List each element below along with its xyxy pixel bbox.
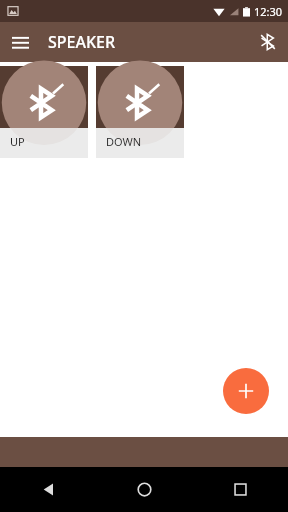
staticText: UP <box>10 134 25 149</box>
button[interactable]: Add <box>223 368 269 414</box>
button[interactable]: Home <box>96 467 192 512</box>
button[interactable]: Recent apps <box>192 467 288 512</box>
button[interactable]: Back <box>0 467 96 512</box>
button[interactable]: UP <box>0 66 88 158</box>
button[interactable]: Bluetooth disabled <box>248 22 288 62</box>
button[interactable]: Open navigation drawer <box>0 22 40 62</box>
staticText: SPEAKER <box>48 31 116 53</box>
staticText: DOWN <box>106 134 142 149</box>
staticText: 12:30 <box>254 4 283 19</box>
button[interactable]: DOWN <box>96 66 184 158</box>
